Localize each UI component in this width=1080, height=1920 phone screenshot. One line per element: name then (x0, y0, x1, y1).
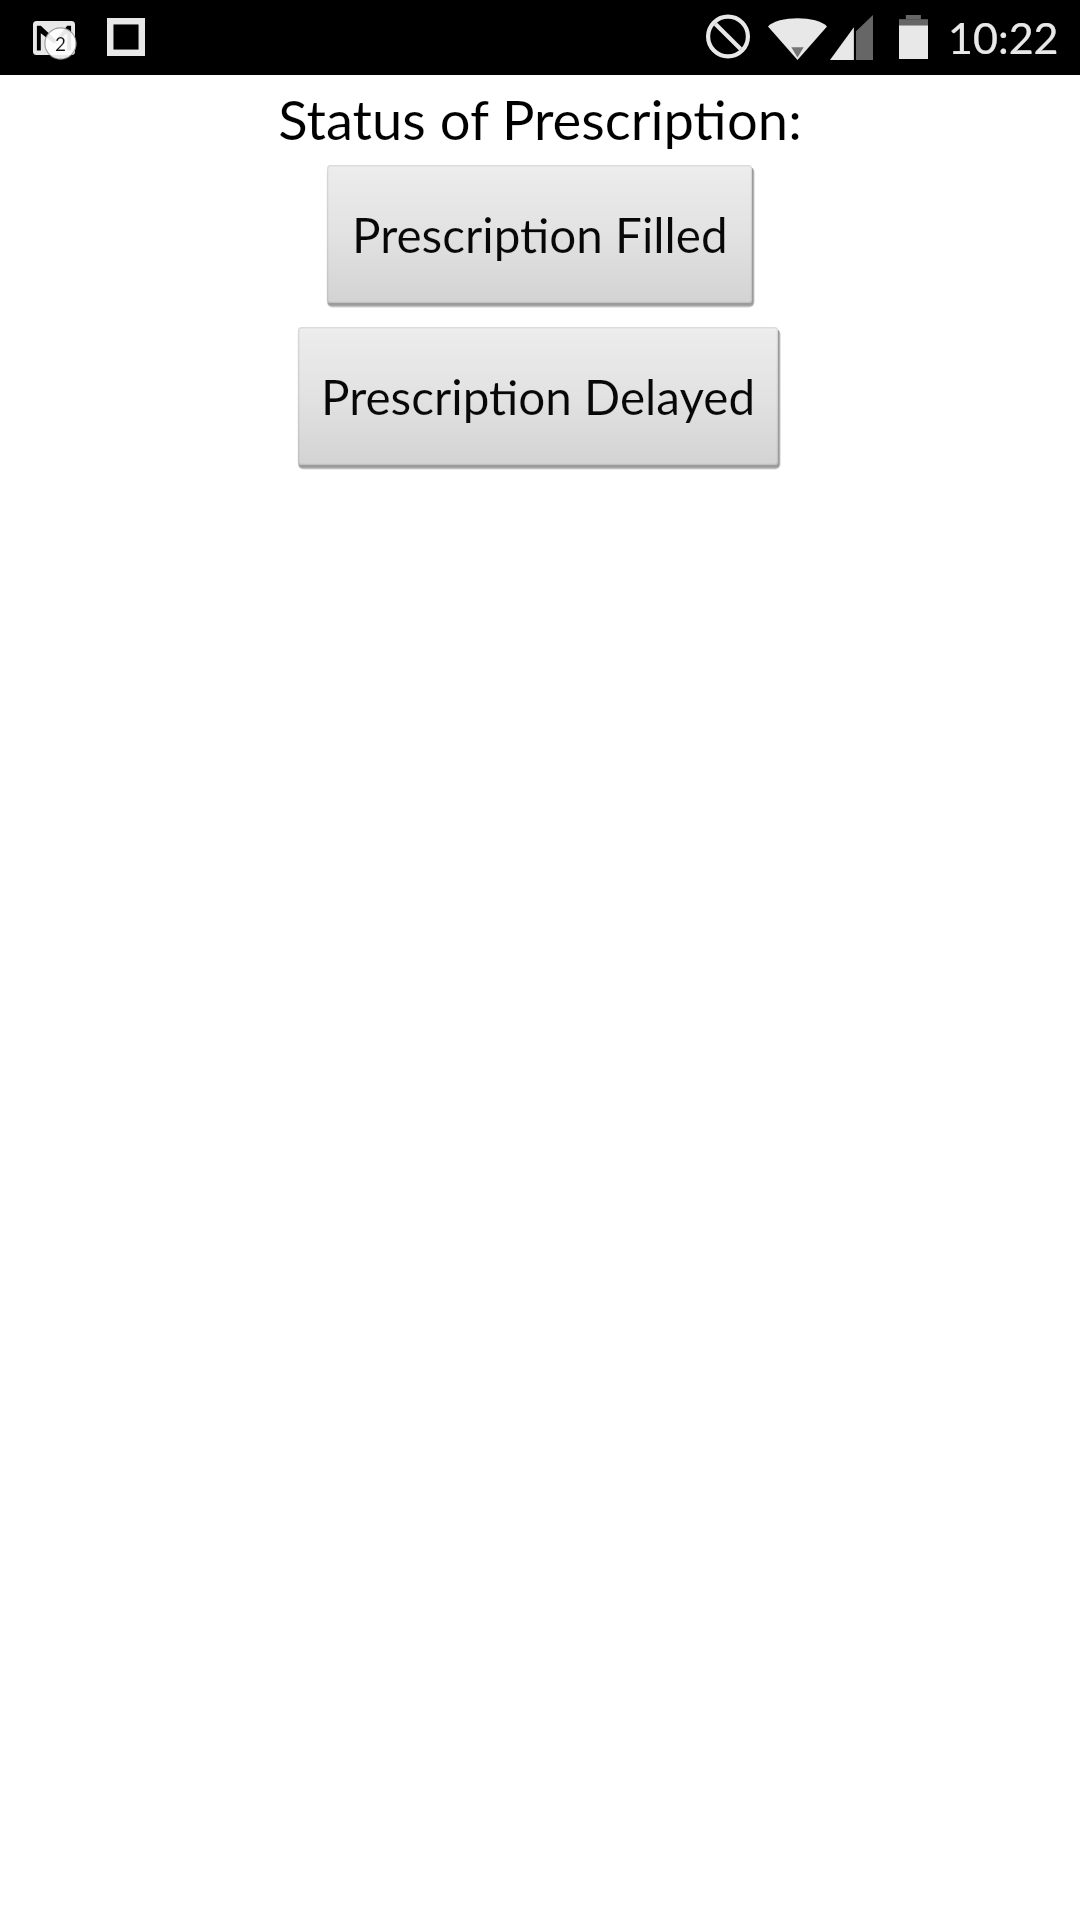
staticText: 2 (55, 32, 67, 55)
other: Screenshot (107, 18, 145, 56)
button[interactable]: Prescription Delayed (298, 327, 778, 465)
staticText: Prescription Delayed (321, 368, 756, 425)
other: Mobile signal (830, 15, 873, 60)
staticText: Prescription Filled (352, 206, 728, 263)
other: Battery (899, 15, 928, 59)
other: 2 unread emails (33, 21, 78, 61)
staticText: Status of Prescription: (0, 86, 1080, 151)
other: Do not disturb (706, 15, 750, 58)
button[interactable]: Prescription Filled (327, 165, 752, 303)
other: Wi-Fi (768, 15, 827, 60)
staticText: 10:22 (948, 12, 1059, 64)
